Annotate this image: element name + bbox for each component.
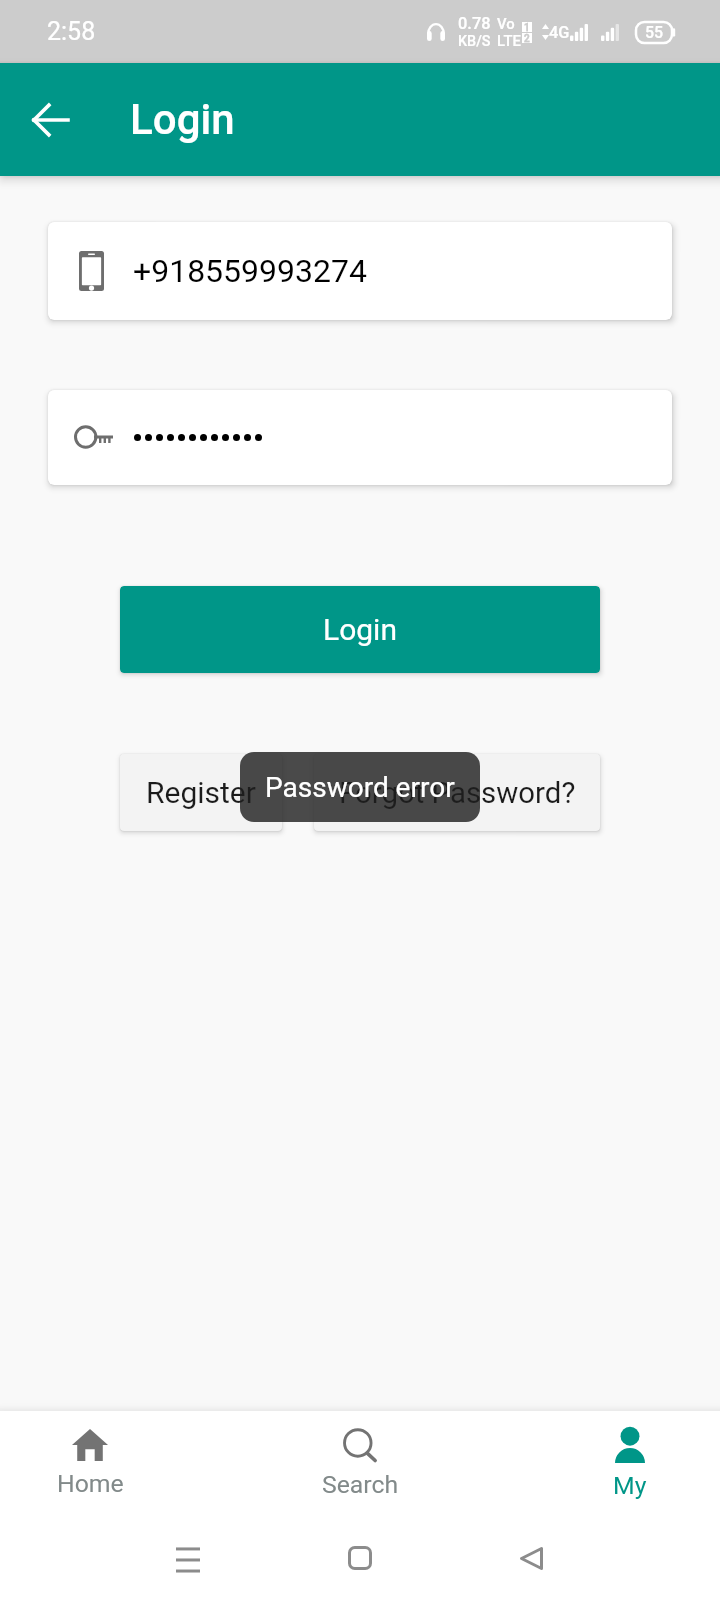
staticText: Forgot Password? xyxy=(339,776,576,810)
button[interactable]: Recents xyxy=(140,1516,236,1600)
staticText: Register xyxy=(146,775,256,810)
staticText: 2 xyxy=(524,33,530,43)
staticText: Login xyxy=(323,612,397,647)
staticText: +918559993274 xyxy=(133,252,367,290)
button[interactable]: Search xyxy=(270,1411,450,1516)
button[interactable]: Back xyxy=(483,1516,579,1600)
button[interactable]: My xyxy=(540,1411,720,1516)
staticText: 0.78 xyxy=(458,14,491,33)
staticText: 55 xyxy=(645,23,664,42)
staticText: 4G xyxy=(549,23,570,42)
staticText: My xyxy=(613,1471,647,1500)
button[interactable]: +918559993274 xyxy=(48,222,672,320)
staticText: Home xyxy=(57,1469,124,1498)
staticText: Password error xyxy=(265,771,455,804)
button[interactable]: Back xyxy=(10,80,90,160)
button[interactable]: Register xyxy=(120,754,282,831)
staticText: LTE xyxy=(497,32,521,49)
staticText: KB/S xyxy=(458,33,491,50)
button[interactable] xyxy=(48,390,672,485)
staticText: Login xyxy=(130,95,235,144)
button[interactable]: Home xyxy=(0,1411,180,1516)
staticText: 2:58 xyxy=(47,17,96,46)
staticText: Vo xyxy=(497,15,515,32)
button[interactable]: Login xyxy=(120,586,600,673)
staticText: 1 xyxy=(524,22,530,32)
button[interactable]: Forgot Password? xyxy=(314,754,600,831)
button[interactable]: Home xyxy=(312,1516,408,1600)
staticText: Search xyxy=(322,1470,399,1499)
